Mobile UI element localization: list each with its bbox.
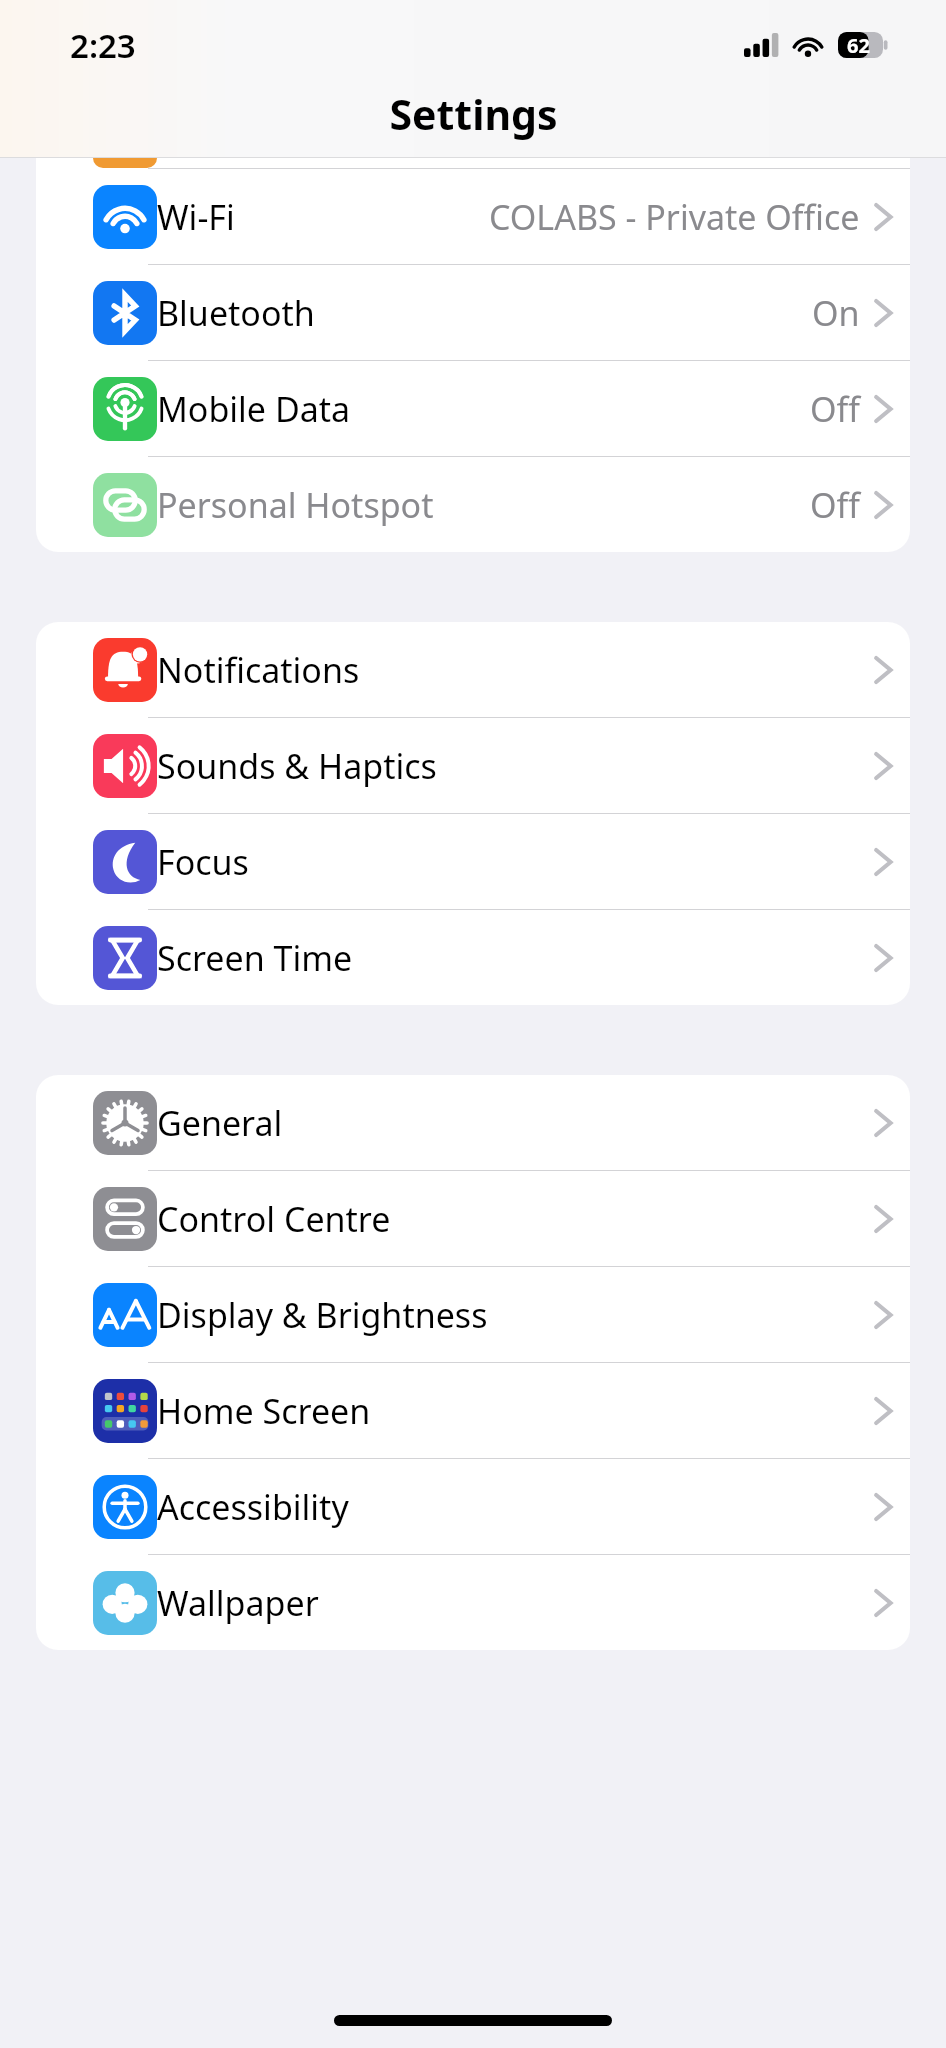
button[interactable]: Display & Brightness (36, 1267, 910, 1362)
button[interactable]: Screen Time (36, 910, 910, 1005)
staticText: Sounds & Haptics (157, 743, 437, 789)
staticText: Home Screen (157, 1388, 371, 1434)
staticText: General (157, 1100, 283, 1146)
staticText: Control Centre (157, 1196, 391, 1242)
button[interactable]: Notifications (36, 622, 910, 717)
staticText: Notifications (157, 647, 360, 693)
staticText: On (812, 290, 860, 336)
staticText: Wi-Fi (157, 194, 235, 240)
button[interactable]: Personal Hotspot (36, 457, 910, 552)
staticText: Display & Brightness (157, 1292, 488, 1338)
staticText: Accessibility (157, 1484, 349, 1530)
staticText: Screen Time (157, 935, 353, 981)
button[interactable]: Focus (36, 814, 910, 909)
button[interactable]: Wi-Fi (36, 169, 910, 264)
staticText: Bluetooth (157, 290, 315, 336)
staticText: Personal Hotspot (157, 482, 434, 528)
staticText: Off (810, 482, 860, 528)
button[interactable]: Mobile Data (36, 361, 910, 456)
button[interactable]: Accessibility (36, 1459, 910, 1554)
staticText: Focus (157, 839, 249, 885)
button[interactable]: Home Screen (36, 1363, 910, 1458)
staticText: Wallpaper (157, 1580, 319, 1626)
staticText: 62 (847, 32, 870, 59)
button[interactable]: Bluetooth (36, 265, 910, 360)
staticText: 2:23 (70, 23, 136, 68)
staticText: Settings (389, 86, 558, 142)
button[interactable]: Control Centre (36, 1171, 910, 1266)
button[interactable]: General (36, 1075, 910, 1170)
button[interactable] (36, 158, 910, 168)
staticText: Mobile Data (157, 386, 351, 432)
staticText: Off (810, 386, 860, 432)
button[interactable]: Sounds & Haptics (36, 718, 910, 813)
staticText: COLABS - Private Office (489, 194, 860, 240)
button[interactable]: Wallpaper (36, 1555, 910, 1650)
